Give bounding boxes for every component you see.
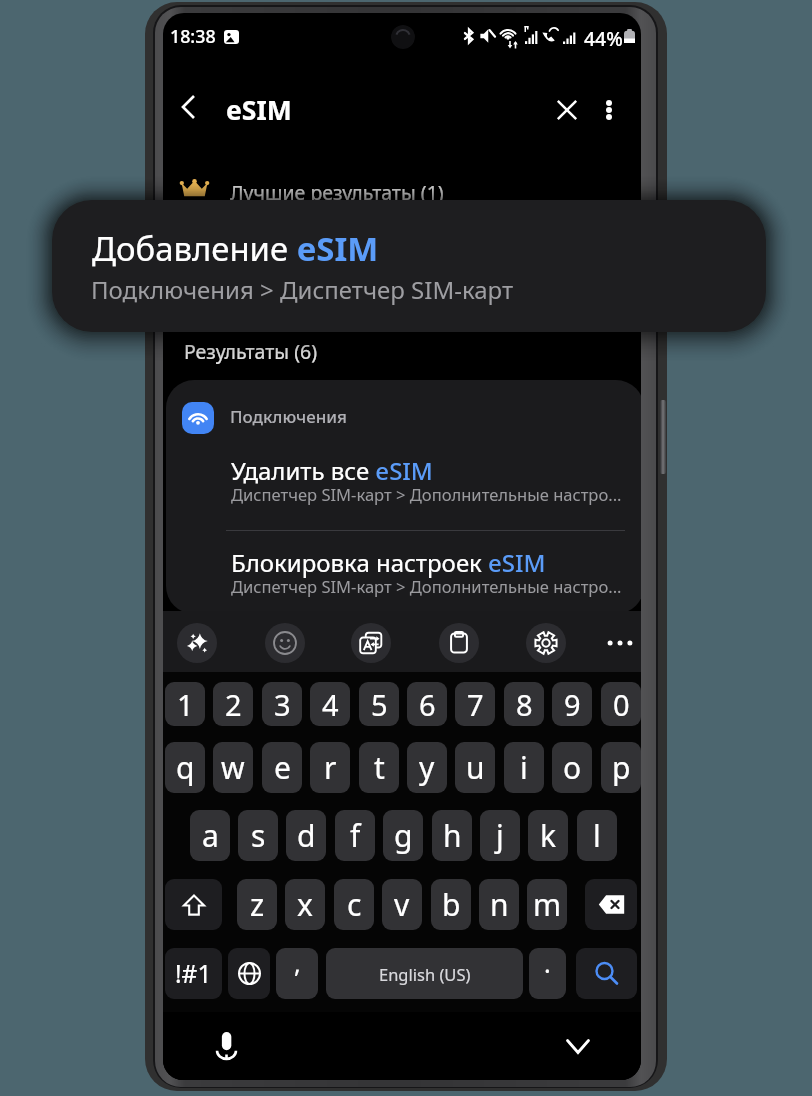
button[interactable]: Добавление eSIM [52, 200, 766, 332]
button[interactable]: Удалить все eSIM [166, 454, 641, 510]
button[interactable]: Search [576, 948, 637, 999]
staticText: 44% [584, 25, 623, 51]
button[interactable]: 7 [455, 682, 495, 726]
button[interactable]: w [213, 742, 253, 793]
staticText: v [394, 884, 410, 925]
staticText: 8 [516, 685, 533, 724]
button[interactable]: English (US) [326, 948, 523, 999]
staticText: !#1 [175, 957, 212, 990]
button[interactable]: 6 [407, 682, 447, 726]
button[interactable]: d [286, 810, 326, 861]
button[interactable]: f [335, 810, 375, 861]
button[interactable]: Clipboard [439, 623, 479, 663]
button[interactable]: 0 [601, 682, 641, 726]
staticText: Удалить все eSIM [231, 454, 433, 487]
button[interactable]: r [310, 742, 350, 793]
button[interactable]: Hide keyboard [557, 1025, 599, 1067]
button[interactable]: q [165, 742, 205, 793]
button[interactable]: b [431, 879, 471, 930]
button[interactable]: AI suggestions [177, 623, 217, 663]
button[interactable]: Change language [228, 948, 270, 999]
staticText: y [419, 747, 435, 788]
staticText: d [297, 815, 316, 856]
button[interactable]: e [262, 742, 302, 793]
button[interactable]: Clear search [544, 87, 590, 133]
staticText: m [533, 884, 562, 925]
button[interactable]: l [577, 810, 617, 861]
staticText: Результаты (6) [184, 338, 318, 365]
button[interactable]: Shift [165, 879, 222, 930]
staticText: f [350, 815, 361, 856]
staticText: Блокировка настроек eSIM [231, 546, 546, 579]
staticText: 4 [322, 685, 339, 724]
staticText: Диспетчер SIM-карт > Дополнительные наст… [231, 575, 622, 598]
button[interactable]: 5 [359, 682, 399, 726]
button[interactable]: p [601, 742, 641, 793]
button[interactable]: More options [586, 87, 632, 133]
button[interactable]: Back [166, 85, 210, 129]
button[interactable]: Settings [526, 623, 566, 663]
staticText: 1 [177, 685, 194, 724]
button[interactable]: 1 [165, 682, 205, 726]
button[interactable]: 9 [552, 682, 592, 726]
button[interactable]: 4 [310, 682, 350, 726]
button[interactable]: 8 [504, 682, 544, 726]
button[interactable]: More keyboard options [600, 623, 640, 663]
staticText: c [347, 884, 362, 925]
button[interactable]: Voice input [205, 1025, 247, 1067]
button[interactable]: !#1 [165, 948, 222, 999]
button[interactable]: u [455, 742, 495, 793]
staticText: x [297, 884, 313, 925]
button[interactable]: v [382, 879, 422, 930]
staticText: p [612, 747, 631, 788]
button[interactable]: Backspace [585, 879, 637, 930]
button[interactable]: c [334, 879, 374, 930]
button[interactable]: s [238, 810, 278, 861]
staticText: 3 [274, 685, 291, 724]
staticText: n [490, 884, 509, 925]
staticText: 0 [613, 685, 630, 724]
button[interactable]: . [529, 948, 566, 999]
button[interactable]: y [407, 742, 447, 793]
staticText: t [374, 747, 385, 788]
button[interactable]: t [359, 742, 399, 793]
button[interactable]: i [504, 742, 544, 793]
button[interactable]: x [285, 879, 325, 930]
staticText: English (US) [379, 963, 471, 985]
button[interactable]: z [237, 879, 277, 930]
staticText: h [443, 815, 462, 856]
button[interactable]: m [527, 879, 567, 930]
staticText: , [294, 948, 301, 980]
button[interactable]: h [432, 810, 472, 861]
staticText: 7 [467, 685, 484, 724]
staticText: z [250, 884, 265, 925]
staticText: s [251, 815, 266, 856]
button[interactable]: Translate [351, 623, 391, 663]
button[interactable]: a [190, 810, 230, 861]
staticText: l [593, 815, 601, 856]
staticText: 9 [564, 685, 581, 724]
button[interactable]: j [480, 810, 520, 861]
button[interactable]: g [383, 810, 423, 861]
staticText: k [540, 815, 557, 856]
button[interactable]: o [552, 742, 592, 793]
button[interactable]: , [276, 948, 318, 999]
staticText: eSIM [226, 92, 292, 128]
button[interactable]: Блокировка настроек eSIM [166, 546, 641, 602]
staticText: r [324, 747, 337, 788]
button[interactable]: Emoji [265, 623, 305, 663]
staticText: . [544, 948, 551, 980]
staticText: a [202, 815, 219, 856]
staticText: u [466, 747, 485, 788]
staticText: b [442, 884, 461, 925]
staticText: e [274, 747, 291, 788]
button[interactable]: 2 [213, 682, 253, 726]
staticText: Подключения > Диспетчер SIM-карт [91, 273, 514, 306]
button[interactable]: 3 [262, 682, 302, 726]
staticText: 18:38 [170, 24, 216, 48]
staticText: w [221, 747, 245, 788]
staticText: o [563, 747, 582, 788]
button[interactable]: k [528, 810, 568, 861]
staticText: 2 [225, 685, 242, 724]
button[interactable]: n [479, 879, 519, 930]
